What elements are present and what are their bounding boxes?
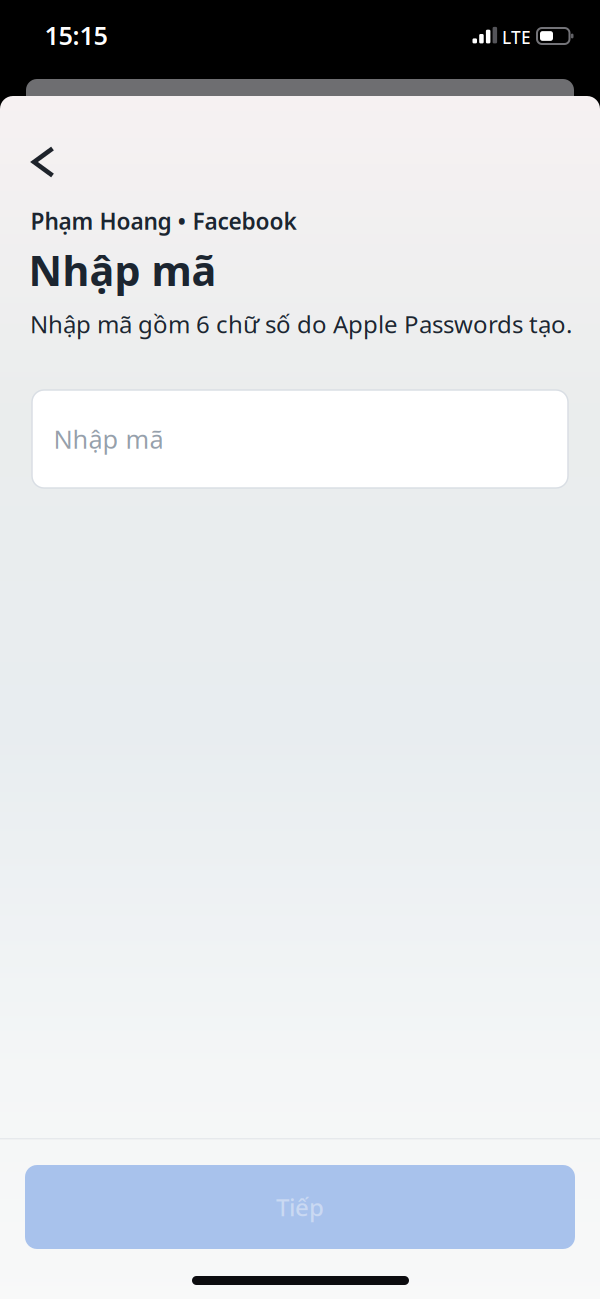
- staticText: Tiếp: [276, 1191, 324, 1223]
- staticText: Nhập mã: [28, 242, 216, 297]
- staticText: LTE: [502, 26, 531, 49]
- button[interactable]: Back: [21, 140, 65, 184]
- button[interactable]: Nhập mã: [32, 390, 568, 488]
- staticText: Nhập mã: [53, 422, 163, 456]
- staticText: 15:15: [44, 18, 107, 52]
- staticText: Nhập mã gồm 6 chữ số do Apple Passwords …: [30, 308, 572, 340]
- button[interactable]: Tiếp: [25, 1165, 575, 1249]
- staticText: Phạm Hoang • Facebook: [30, 206, 296, 236]
